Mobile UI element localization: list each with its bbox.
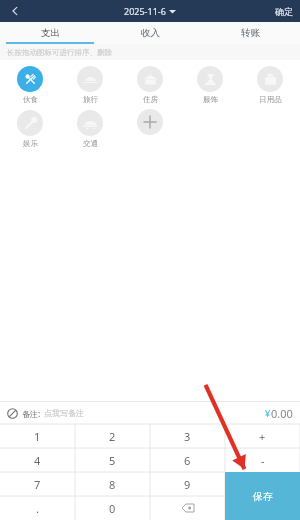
staticText: 日用品 <box>259 95 282 104</box>
staticText: 旅行 <box>83 95 98 104</box>
button[interactable]: . <box>0 496 75 520</box>
button[interactable]: 2025-11-6 <box>124 5 176 17</box>
button[interactable]: 4 <box>0 448 75 472</box>
staticText: 2 <box>109 429 116 444</box>
button[interactable]: 转账 <box>200 22 300 44</box>
staticText: - <box>261 453 265 468</box>
staticText: 0.00 <box>271 406 293 421</box>
staticText: 收入 <box>141 27 160 39</box>
button[interactable]: 2 <box>75 424 150 448</box>
button[interactable]: 交通 <box>60 109 120 149</box>
staticText: 确定 <box>275 6 293 17</box>
button[interactable]: 保存 <box>225 472 300 520</box>
staticText: 转账 <box>241 27 260 39</box>
button[interactable]: Add category <box>137 109 163 135</box>
button[interactable]: 住房 <box>120 65 180 105</box>
staticText: 5 <box>109 453 116 468</box>
button[interactable]: 6 <box>150 448 225 472</box>
button[interactable]: 5 <box>75 448 150 472</box>
button[interactable]: 娱乐 <box>0 109 60 149</box>
button[interactable]: + <box>225 424 300 448</box>
staticText: ¥ <box>265 407 271 419</box>
button[interactable]: 旅行 <box>60 65 120 105</box>
button[interactable]: - <box>225 448 300 472</box>
button[interactable]: 支出 <box>0 22 100 44</box>
staticText: 伙食 <box>23 95 38 104</box>
button[interactable]: Back <box>0 0 30 22</box>
staticText: 点我写备注 <box>44 408 84 418</box>
staticText: 支出 <box>41 27 60 39</box>
button[interactable]: 伙食 <box>0 65 60 105</box>
staticText: 保存 <box>253 490 273 503</box>
staticText: 1 <box>34 429 41 444</box>
staticText: 9 <box>184 477 191 492</box>
staticText: 8 <box>109 477 116 492</box>
staticText: 住房 <box>143 95 158 104</box>
button[interactable]: 备注: <box>0 402 300 424</box>
staticText: 2025-11-6 <box>124 5 166 17</box>
button[interactable]: 服饰 <box>180 65 240 105</box>
button[interactable]: 3 <box>150 424 225 448</box>
staticText: 服饰 <box>203 95 218 104</box>
staticText: 4 <box>34 453 41 468</box>
button[interactable]: 7 <box>0 472 75 496</box>
button[interactable]: 收入 <box>100 22 200 44</box>
button[interactable]: 9 <box>150 472 225 496</box>
staticText: 交通 <box>83 139 98 148</box>
staticText: 备注: <box>22 408 41 419</box>
staticText: 长按拖动图标可进行排序、删除 <box>7 48 112 57</box>
staticText: 6 <box>184 453 191 468</box>
button[interactable]: 0 <box>75 496 150 520</box>
staticText: 娱乐 <box>23 139 38 148</box>
button[interactable]: Backspace <box>150 496 225 520</box>
staticText: 7 <box>34 477 41 492</box>
staticText: 0 <box>109 501 116 516</box>
staticText: . <box>36 501 39 516</box>
button[interactable]: 1 <box>0 424 75 448</box>
button[interactable]: 日用品 <box>240 65 300 105</box>
button[interactable]: 8 <box>75 472 150 496</box>
staticText: 3 <box>184 429 191 444</box>
staticText: + <box>259 429 266 444</box>
button[interactable]: 确定 <box>268 0 300 22</box>
